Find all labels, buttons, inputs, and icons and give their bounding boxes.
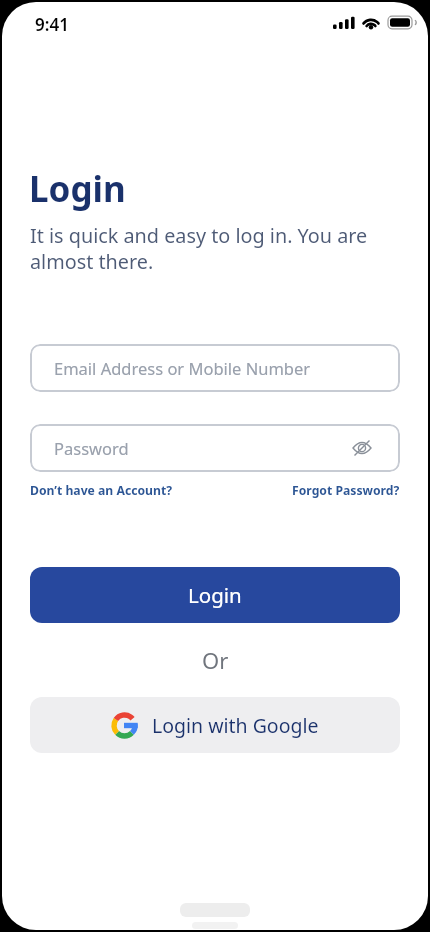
button[interactable]: Password xyxy=(30,424,400,472)
button[interactable]: Don’t have an Account? xyxy=(30,482,173,499)
button[interactable]: Login with Google xyxy=(30,697,400,753)
button[interactable]: Email Address or Mobile Number xyxy=(30,344,400,392)
staticText: Login xyxy=(188,581,242,609)
staticText: Login with Google xyxy=(152,712,319,739)
staticText: Or xyxy=(202,645,229,675)
button[interactable]: Login xyxy=(30,567,400,623)
staticText: 9:41 xyxy=(35,13,69,36)
button[interactable]: Forgot Password? xyxy=(292,482,400,499)
staticText: It is quick and easy to log in. You are … xyxy=(30,222,368,274)
staticText: Login xyxy=(29,165,126,213)
staticText: Password xyxy=(54,437,129,459)
staticText: Email Address or Mobile Number xyxy=(54,357,311,379)
